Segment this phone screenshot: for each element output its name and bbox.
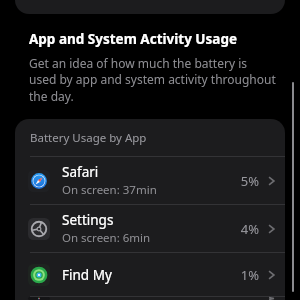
button[interactable]: Safari <box>15 157 285 204</box>
button[interactable] <box>15 0 285 14</box>
staticText: App and System Activity Usage <box>29 30 238 48</box>
staticText: On screen: 37min <box>62 182 157 198</box>
button[interactable]: Find My <box>15 253 285 296</box>
staticText: 5% <box>240 172 259 190</box>
staticText: Safari <box>62 163 99 181</box>
staticText: Settings <box>62 211 114 229</box>
staticText: 1% <box>240 266 259 284</box>
staticText: On screen: 6min <box>62 230 151 246</box>
staticText: 4% <box>240 220 259 238</box>
staticText: Find My <box>62 266 112 284</box>
staticText: Battery Usage by App <box>30 130 147 146</box>
staticText: Get an idea of how much the battery is u… <box>29 55 276 105</box>
button[interactable]: Settings <box>15 205 285 252</box>
button[interactable]: Photos <box>15 297 285 300</box>
